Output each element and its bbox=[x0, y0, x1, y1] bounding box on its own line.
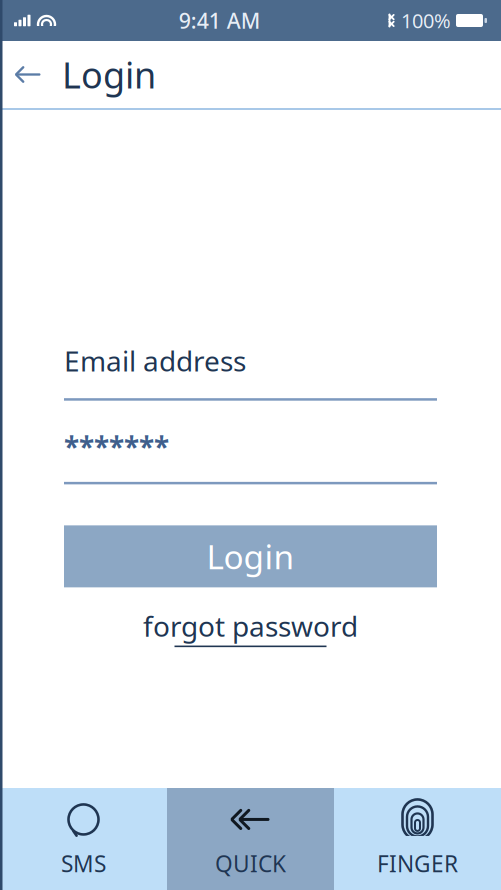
staticText: Email address bbox=[64, 342, 246, 379]
staticText: 100% bbox=[401, 7, 451, 34]
button[interactable]: Back bbox=[0, 46, 56, 102]
staticText: Login bbox=[206, 534, 294, 578]
staticText: 9:41 AM bbox=[179, 6, 261, 35]
staticText: SMS bbox=[61, 848, 106, 878]
button[interactable]: FINGER bbox=[334, 788, 501, 890]
staticText: Login bbox=[62, 51, 156, 98]
staticText: forgot password bbox=[143, 607, 358, 645]
button[interactable]: Login bbox=[64, 525, 437, 587]
staticText: QUICK bbox=[215, 848, 286, 878]
button[interactable]: forgot password bbox=[64, 607, 437, 647]
button[interactable]: QUICK bbox=[167, 788, 334, 890]
staticText: FINGER bbox=[377, 848, 458, 878]
button[interactable]: SMS bbox=[0, 788, 167, 890]
staticText: ******* bbox=[64, 428, 169, 465]
